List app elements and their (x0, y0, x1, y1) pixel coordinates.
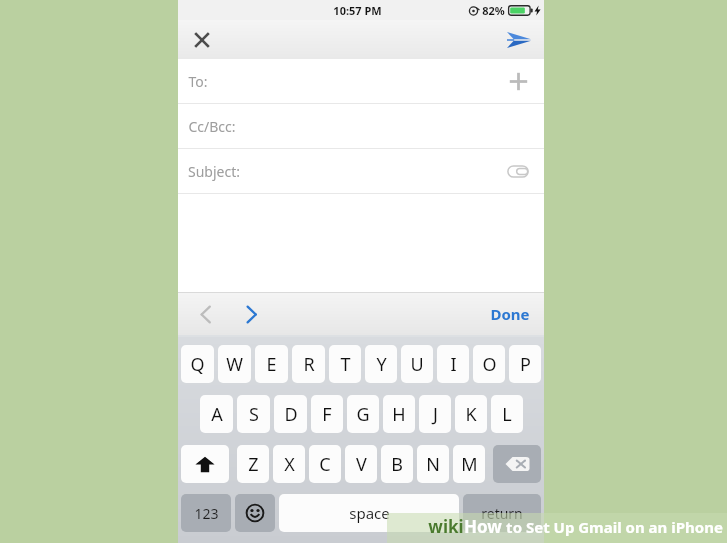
staticText: U (410, 352, 424, 377)
button[interactable]: Emoji keyboard (235, 494, 275, 532)
staticText: F (322, 402, 332, 427)
staticText: Q (190, 352, 205, 377)
staticText: Y (376, 352, 387, 377)
button[interactable]: V (345, 445, 377, 483)
button[interactable]: Shift (181, 445, 229, 483)
staticText: Done (490, 304, 530, 324)
staticText: return (481, 504, 523, 523)
staticText: Z (248, 452, 259, 477)
button[interactable]: Subject: (178, 149, 544, 193)
staticText: 82% (482, 3, 505, 18)
button[interactable]: O (473, 345, 505, 383)
button[interactable]: X (273, 445, 305, 483)
staticText: to Set Up Gmail on an iPhone (506, 517, 723, 537)
button[interactable]: return (463, 494, 541, 532)
staticText: S (249, 402, 259, 427)
staticText: I (450, 352, 457, 377)
button[interactable]: F (311, 395, 343, 433)
staticText: space (349, 503, 390, 523)
button[interactable]: A (200, 395, 233, 433)
button[interactable]: T (329, 345, 361, 383)
button[interactable]: K (455, 395, 487, 433)
button[interactable]: B (381, 445, 413, 483)
staticText: R (303, 352, 315, 377)
button[interactable]: Backspace (493, 445, 541, 483)
staticText: A (211, 402, 223, 427)
button[interactable]: H (383, 395, 415, 433)
button[interactable]: Z (237, 445, 269, 483)
button[interactable]: Send (500, 21, 538, 59)
button[interactable]: Add recipient (503, 66, 533, 96)
staticText: E (266, 352, 277, 377)
staticText: J (433, 402, 438, 427)
staticText: H (392, 402, 406, 427)
staticText: How (464, 515, 502, 538)
staticText: Cc/Bcc: (188, 117, 236, 136)
staticText: P (520, 352, 531, 377)
staticText: Subject: (188, 162, 240, 181)
button[interactable]: E (255, 345, 288, 383)
button[interactable]: W (218, 345, 251, 383)
button[interactable]: Previous field (190, 299, 220, 329)
staticText: To: (188, 72, 208, 91)
button[interactable]: C (309, 445, 341, 483)
staticText: B (391, 452, 403, 477)
button[interactable]: U (401, 345, 433, 383)
button[interactable]: Close (184, 22, 220, 58)
button[interactable]: P (509, 345, 541, 383)
button[interactable]: 123 (181, 494, 231, 532)
button[interactable]: Attach file (503, 156, 533, 186)
staticText: K (465, 402, 477, 427)
staticText: 10:57 PM (333, 3, 382, 18)
staticText: wiki (428, 515, 464, 538)
button[interactable]: N (417, 445, 449, 483)
staticText: M (461, 452, 478, 477)
button[interactable]: S (237, 395, 270, 433)
button[interactable]: I (437, 345, 469, 383)
button[interactable]: Done (484, 298, 536, 330)
button[interactable]: space (279, 494, 459, 532)
button[interactable]: J (419, 395, 451, 433)
staticText: G (356, 402, 370, 427)
button[interactable]: G (347, 395, 379, 433)
staticText: L (502, 402, 512, 427)
button[interactable]: Next field (236, 299, 266, 329)
button[interactable]: Q (181, 345, 214, 383)
staticText: O (482, 352, 497, 377)
staticText: C (319, 452, 331, 477)
button[interactable]: R (292, 345, 325, 383)
button[interactable]: M (453, 445, 485, 483)
staticText: X (284, 452, 295, 477)
staticText: 123 (194, 504, 219, 523)
staticText: N (426, 452, 440, 477)
button[interactable]: D (274, 395, 307, 433)
staticText: W (226, 352, 243, 377)
staticText: D (284, 402, 298, 427)
button[interactable]: Y (365, 345, 397, 383)
staticText: T (340, 352, 351, 377)
staticText: V (356, 452, 367, 477)
button[interactable]: L (491, 395, 523, 433)
button[interactable]: To: (178, 59, 544, 103)
button[interactable]: Cc/Bcc: (178, 104, 544, 148)
